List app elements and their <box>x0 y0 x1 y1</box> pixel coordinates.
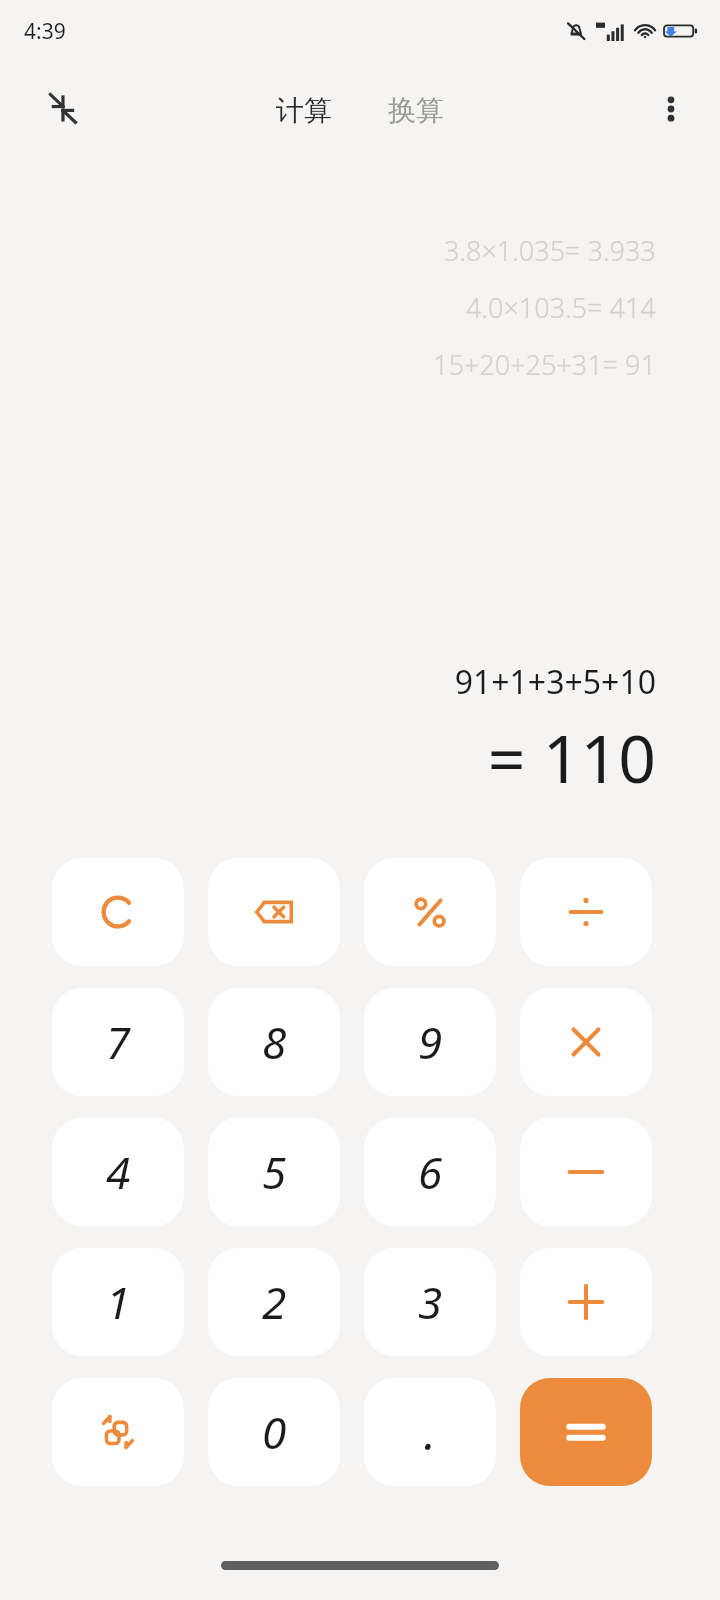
staticText: 计算 <box>276 93 332 128</box>
button[interactable]: Backspace <box>208 858 340 966</box>
button[interactable]: 7 <box>52 988 184 1096</box>
staticText: 0 <box>262 1402 287 1462</box>
staticText: 5 <box>262 1142 287 1202</box>
button[interactable]: 3.8×1.035= 3.933 <box>444 232 656 269</box>
button[interactable]: 4.0×103.5= 414 <box>466 289 656 326</box>
button[interactable]: 3 <box>364 1248 496 1356</box>
button[interactable]: Minus <box>520 1118 652 1226</box>
staticText: 8 <box>262 1012 287 1072</box>
staticText: 2 <box>262 1272 287 1332</box>
staticText: 91+1+3+5+10 <box>454 660 656 704</box>
button[interactable]: 0 <box>208 1378 340 1486</box>
button[interactable]: 4 <box>52 1118 184 1226</box>
button[interactable]: Multiply <box>520 988 652 1096</box>
button[interactable]: 计算 <box>262 87 346 134</box>
staticText: 1 <box>106 1272 131 1332</box>
button[interactable]: 2 <box>208 1248 340 1356</box>
button[interactable]: Clear <box>52 858 184 966</box>
button[interactable]: Divide <box>520 858 652 966</box>
button[interactable]: Unit converter <box>52 1378 184 1486</box>
button[interactable]: 8 <box>208 988 340 1096</box>
staticText: = 110 <box>487 712 656 802</box>
button[interactable]: 换算 <box>374 87 458 134</box>
button[interactable]: . <box>364 1378 496 1486</box>
staticText: . <box>424 1401 436 1464</box>
staticText: 3 <box>418 1272 443 1332</box>
staticText: 9 <box>418 1012 443 1072</box>
staticText: 7 <box>106 1012 131 1072</box>
staticText: 4:39 <box>24 17 66 46</box>
staticText: 4 <box>106 1142 131 1202</box>
button[interactable]: 15+20+25+31= 91 <box>433 346 656 383</box>
button[interactable]: 5 <box>208 1118 340 1226</box>
button[interactable]: Collapse <box>38 84 86 132</box>
staticText: 6 <box>418 1142 443 1202</box>
button[interactable]: Plus <box>520 1248 652 1356</box>
button[interactable]: 1 <box>52 1248 184 1356</box>
button[interactable]: Percent <box>364 858 496 966</box>
button[interactable]: 9 <box>364 988 496 1096</box>
button[interactable]: More options <box>648 86 694 132</box>
staticText: 换算 <box>388 93 444 128</box>
button[interactable]: Equals <box>520 1378 652 1486</box>
button[interactable]: 6 <box>364 1118 496 1226</box>
